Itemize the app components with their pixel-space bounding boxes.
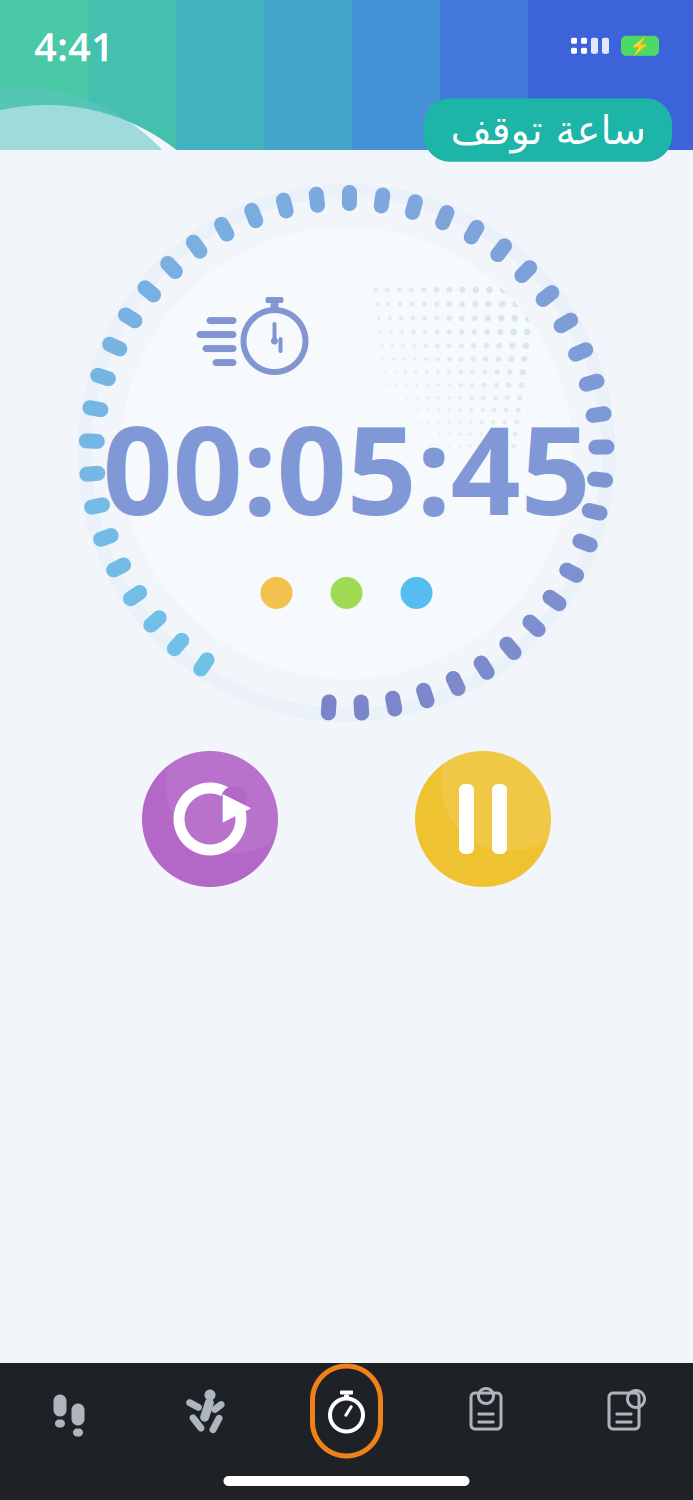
button[interactable]: Stopwatch bbox=[276, 1363, 417, 1459]
button[interactable]: Pause bbox=[415, 751, 551, 887]
staticText: 00:05:45 bbox=[102, 386, 590, 549]
staticText: ساعة توقف bbox=[450, 107, 646, 153]
staticText: ⚡ bbox=[629, 36, 651, 56]
button[interactable]: History bbox=[555, 1363, 693, 1459]
button[interactable]: Activity bbox=[138, 1363, 276, 1459]
button[interactable]: ساعة توقف bbox=[424, 98, 672, 162]
button[interactable]: Steps bbox=[0, 1363, 138, 1459]
staticText: ▶ bbox=[222, 784, 251, 826]
button[interactable]: Restart bbox=[142, 751, 278, 887]
staticText: 4:41 bbox=[34, 19, 114, 72]
button[interactable]: Plans bbox=[417, 1363, 555, 1459]
